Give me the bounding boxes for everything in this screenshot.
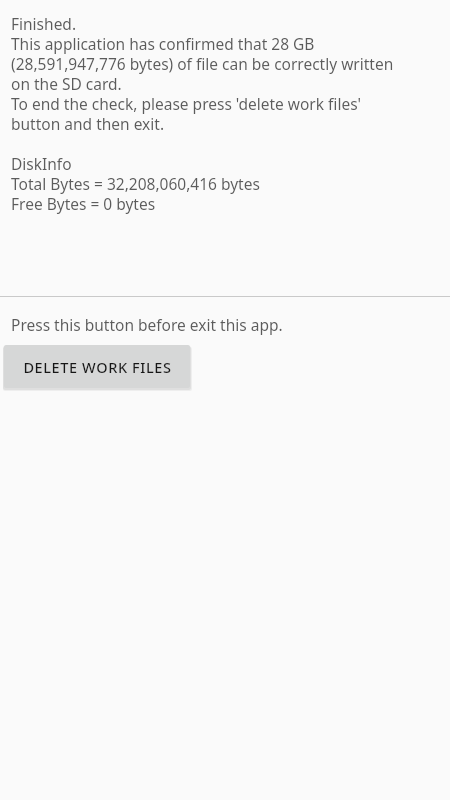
staticText: Press this button before exit this app. bbox=[11, 314, 283, 335]
staticText: DELETE WORK FILES bbox=[23, 357, 172, 377]
staticText: Finished. This application has confirmed… bbox=[11, 13, 450, 215]
button[interactable]: DELETE WORK FILES bbox=[4, 345, 190, 388]
